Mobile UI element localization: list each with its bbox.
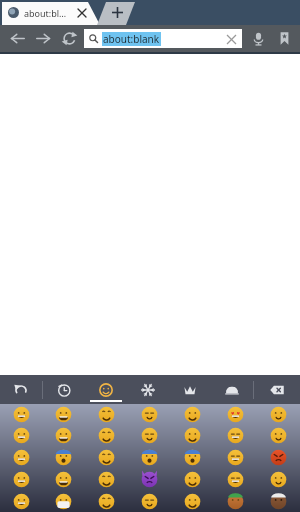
button[interactable]: Voice search [245,25,271,52]
button[interactable]: Emoji [85,404,128,425]
button[interactable]: about:bl… [0,0,100,25]
button[interactable]: Emoji [0,490,42,512]
button[interactable]: Emoji [128,468,171,490]
button[interactable]: Emoji [42,446,85,468]
button[interactable]: New tab [97,0,137,25]
button[interactable]: Emoji [128,425,171,446]
button[interactable]: Emoji [171,468,214,490]
button[interactable]: Forward [30,25,56,52]
button[interactable]: Nature [127,375,169,404]
button[interactable]: Emoji [257,404,300,425]
button[interactable]: Emoji [214,490,257,512]
button[interactable]: Emoji [85,425,128,446]
button[interactable]: Emoji [42,404,85,425]
button[interactable]: Bookmarks [271,25,297,52]
button[interactable]: Emoji [214,425,257,446]
button[interactable]: Emoji [0,468,42,490]
button[interactable]: Emoji [257,446,300,468]
button[interactable]: Emoji [42,425,85,446]
button[interactable]: Close tab [74,5,90,21]
button[interactable]: Emoji [257,468,300,490]
button[interactable]: Emoji [214,468,257,490]
button[interactable]: Emoji [171,425,214,446]
button[interactable]: Emoji [128,404,171,425]
button[interactable]: Emoji [0,425,42,446]
staticText: about:bl… [24,7,67,19]
button[interactable]: Emoji [0,404,42,425]
button[interactable]: Recent [43,375,85,404]
button[interactable]: Emoji [128,446,171,468]
button[interactable]: Emoji [0,446,42,468]
button[interactable]: Objects [169,375,211,404]
button[interactable]: Emoji [0,404,300,512]
button[interactable]: Emoji [42,468,85,490]
button[interactable]: Backspace [254,375,300,404]
staticText: about:blank [103,32,160,46]
button[interactable]: Clear [225,33,237,45]
button[interactable]: Reload [56,25,82,52]
button[interactable]: Travel [211,375,253,404]
button[interactable]: Emoji [128,490,171,512]
button[interactable]: Emoji [85,446,128,468]
button[interactable]: Emoji [171,490,214,512]
button[interactable]: Emoji [85,490,128,512]
button[interactable]: Emoji [214,446,257,468]
button[interactable]: Emoji [171,446,214,468]
button[interactable]: Emoji [42,490,85,512]
button[interactable]: Undo [0,375,42,404]
button[interactable]: Emoji [171,404,214,425]
button[interactable]: Smileys [85,375,127,404]
button[interactable]: Emoji [214,404,257,425]
button[interactable]: Emoji [257,425,300,446]
button[interactable]: Emoji [257,490,300,512]
button[interactable]: Back [4,25,30,52]
button[interactable]: about:blank [84,29,242,48]
button[interactable]: Emoji [85,468,128,490]
